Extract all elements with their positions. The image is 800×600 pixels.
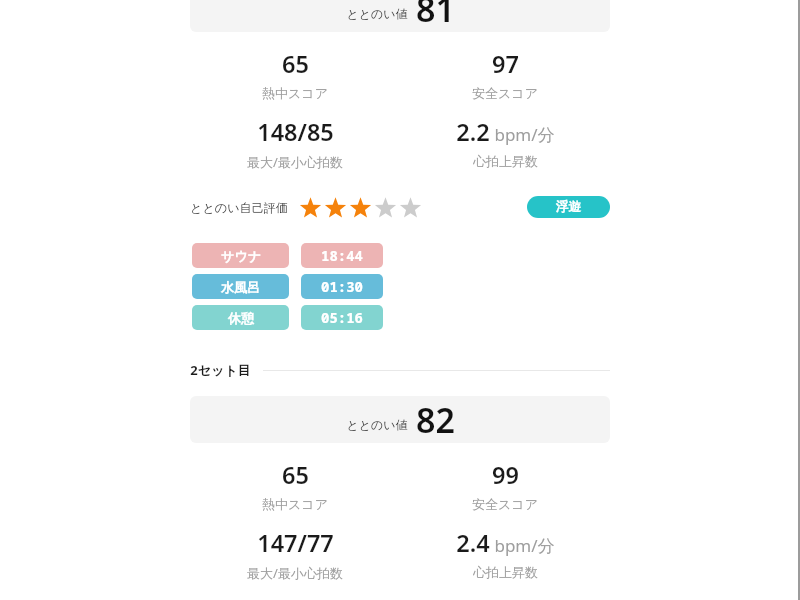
staticText: 心拍上昇数 [473, 564, 538, 580]
button[interactable]: 休憩 [192, 305, 383, 330]
staticText: 97 [492, 48, 519, 80]
staticText: 2セット目 [190, 361, 251, 379]
staticText: 熱中スコア [262, 496, 328, 512]
staticText: 心拍上昇数 [473, 153, 538, 169]
staticText: 安全スコア [472, 85, 538, 101]
staticText: 18:44 [321, 246, 363, 265]
staticText: 05:16 [321, 308, 363, 327]
button[interactable]: 浮遊 [527, 196, 610, 218]
staticText: 浮遊 [556, 199, 581, 215]
staticText: 81 [416, 0, 455, 32]
staticText: サウナ [221, 248, 261, 264]
button[interactable]: Self rating 3 of 5 stars [298, 197, 423, 218]
staticText: 2.4 [456, 527, 490, 559]
button[interactable]: ととのい値 [190, 396, 610, 443]
staticText: bpm/分 [494, 123, 555, 146]
staticText: 休憩 [228, 310, 254, 326]
button[interactable]: ととのい値 [190, 0, 610, 32]
staticText: 65 [282, 459, 309, 491]
staticText: 最大/最小心拍数 [247, 564, 343, 582]
staticText: ととのい値 [346, 417, 408, 432]
button[interactable]: 水風呂 [192, 274, 383, 299]
staticText: bpm/分 [494, 534, 555, 557]
staticText: 水風呂 [221, 279, 260, 295]
staticText: 147/77 [257, 527, 334, 559]
staticText: 01:30 [321, 277, 363, 296]
staticText: 65 [282, 48, 309, 80]
staticText: ととのい値 [346, 6, 408, 21]
staticText: 熱中スコア [262, 85, 328, 101]
staticText: 99 [492, 459, 519, 491]
button[interactable]: サウナ [192, 243, 383, 268]
staticText: ととのい自己評価 [190, 200, 288, 215]
staticText: 最大/最小心拍数 [247, 153, 343, 171]
staticText: 安全スコア [472, 496, 538, 512]
staticText: 82 [416, 397, 455, 443]
staticText: 2.2 [456, 116, 490, 148]
staticText: 148/85 [257, 116, 334, 148]
